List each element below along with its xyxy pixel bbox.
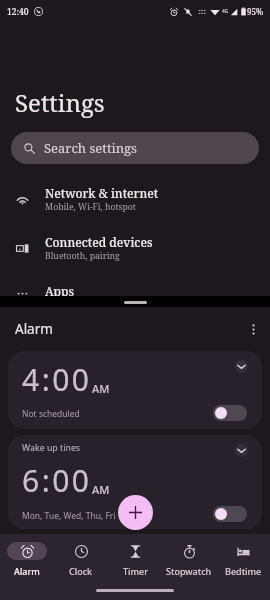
staticText: Settings: [15, 86, 105, 119]
staticText: 12:40: [7, 6, 29, 18]
staticText: Mobile, Wi-Fi, hotspot: [45, 201, 136, 213]
staticText: 4G: [222, 8, 229, 15]
button[interactable]: More options: [242, 318, 264, 340]
staticText: Stopwatch: [166, 565, 212, 577]
button[interactable]: Expand alarm: [229, 438, 253, 462]
button[interactable]: Wake up tines: [8, 435, 262, 529]
staticText: 95%: [247, 6, 264, 17]
staticText: Alarm: [14, 565, 40, 577]
staticText: Apps: [45, 283, 75, 299]
button[interactable]: Apps: [0, 278, 270, 316]
button[interactable]: Network & internet: [0, 180, 270, 218]
staticText: Bedtime: [225, 565, 262, 577]
staticText: Not scheduled: [22, 408, 80, 420]
button[interactable]: Clock: [54, 534, 108, 582]
button[interactable]: Alarm: [0, 534, 54, 582]
button[interactable]: Toggle alarm: [213, 506, 247, 522]
staticText: Wake up tines: [22, 442, 81, 454]
staticText: Connected devices: [45, 234, 153, 250]
staticText: Alarm: [15, 320, 53, 338]
button[interactable]: Stopwatch: [162, 534, 216, 582]
button[interactable]: 4:00: [8, 351, 262, 429]
button[interactable]: Connected devices: [0, 229, 270, 267]
staticText: Timer: [123, 565, 148, 577]
button[interactable]: Add alarm: [118, 495, 153, 530]
staticText: 4:00: [22, 359, 92, 400]
button[interactable]: Bedtime: [216, 534, 270, 582]
button[interactable]: Expand alarm: [229, 354, 253, 378]
button[interactable]: Search settings: [11, 132, 259, 164]
staticText: 6:00: [22, 460, 92, 501]
button[interactable]: Toggle alarm: [213, 405, 247, 421]
staticText: AM: [92, 482, 110, 497]
button[interactable]: Timer: [108, 534, 162, 582]
staticText: Search settings: [44, 139, 137, 157]
staticText: Network & internet: [45, 185, 159, 201]
staticText: Clock: [69, 565, 93, 577]
staticText: Mon, Tue, Wed, Thu, Fri: [22, 510, 116, 522]
staticText: AM: [92, 381, 110, 396]
staticText: Bluetooth, pairing: [45, 250, 120, 262]
